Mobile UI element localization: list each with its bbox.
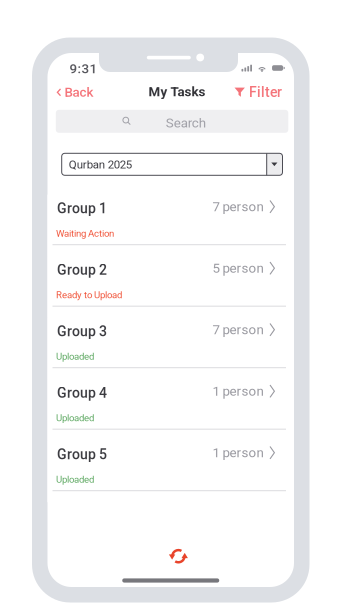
staticText: Qurban 2025 — [69, 158, 132, 171]
staticText: Group 1 — [57, 200, 107, 217]
button[interactable]: Group 2 — [47, 256, 294, 318]
staticText: Uploaded — [56, 351, 94, 362]
staticText: Back — [64, 84, 93, 100]
button[interactable]: Refresh — [167, 548, 189, 565]
staticText: Uploaded — [56, 412, 94, 424]
staticText: 7 person — [212, 322, 263, 337]
staticText: Waiting Action — [56, 228, 114, 239]
staticText: My Tasks — [148, 84, 205, 100]
staticText: 7 person — [212, 199, 263, 214]
staticText: Search — [166, 115, 206, 131]
staticText: Group 4 — [57, 385, 107, 401]
button[interactable]: Search — [56, 110, 288, 133]
staticText: 1 person — [212, 383, 263, 399]
staticText: Filter — [249, 84, 282, 100]
staticText: Ready to Upload — [56, 289, 122, 301]
button[interactable]: Group 3 — [47, 318, 294, 379]
staticText: Group 2 — [57, 262, 107, 278]
staticText: Group 5 — [57, 446, 107, 463]
button[interactable]: Group 1 — [47, 195, 294, 256]
button[interactable]: Group 5 — [47, 441, 294, 502]
staticText: Group 3 — [57, 323, 107, 340]
staticText: 1 person — [212, 445, 263, 460]
button[interactable]: Qurban 2025 — [62, 153, 282, 175]
button[interactable]: Group 4 — [47, 379, 294, 441]
button[interactable]: Filter — [230, 79, 286, 105]
staticText: Uploaded — [56, 474, 94, 485]
staticText: 9:31 — [69, 61, 97, 77]
staticText: 5 person — [212, 260, 263, 276]
button[interactable]: Back — [52, 79, 97, 105]
